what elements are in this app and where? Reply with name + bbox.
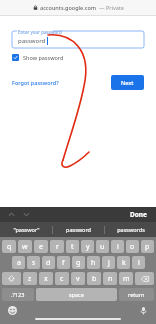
staticText: j [108, 258, 110, 268]
staticText: e [39, 242, 43, 252]
staticText: passwords [117, 226, 145, 233]
staticText: h [91, 258, 96, 268]
button[interactable]: v [71, 272, 85, 285]
button[interactable]: Enter your password [12, 28, 144, 48]
staticText: r [56, 242, 59, 252]
staticText: v [76, 274, 80, 284]
staticText: Next [121, 79, 134, 86]
staticText: c [60, 274, 64, 284]
staticText: m [123, 274, 130, 284]
staticText: x [44, 274, 48, 284]
button[interactable]: Backspace [135, 272, 154, 285]
staticText: y [86, 242, 90, 252]
staticText: p [145, 242, 150, 252]
staticText: return [128, 291, 145, 298]
button[interactable]: e [34, 240, 48, 253]
staticText: space [69, 291, 84, 298]
button[interactable]: "passwor" [0, 222, 52, 237]
button[interactable]: Previous field [6, 209, 17, 220]
staticText: s [32, 258, 36, 268]
staticText: k [122, 258, 126, 268]
staticText: d [46, 258, 51, 268]
button[interactable]: Next field [21, 209, 32, 220]
button[interactable]: p [141, 240, 154, 253]
button[interactable]: f [57, 256, 70, 269]
staticText: a [17, 258, 21, 268]
button[interactable]: Done [127, 208, 150, 221]
staticText: .?123 [11, 291, 25, 298]
button[interactable]: y [81, 240, 94, 253]
staticText: Enter your password [18, 29, 62, 35]
button[interactable]: return [119, 288, 154, 301]
button[interactable]: Emoji [7, 305, 18, 316]
button[interactable]: t [66, 240, 79, 253]
staticText: l [138, 258, 140, 268]
button[interactable]: Shift [2, 272, 21, 285]
staticText: i [117, 242, 119, 252]
button[interactable]: Next [111, 75, 144, 90]
button[interactable]: n [103, 272, 117, 285]
button[interactable]: d [42, 256, 55, 269]
staticText: n [108, 274, 113, 284]
staticText: w [22, 242, 28, 252]
staticText: t [71, 242, 74, 252]
button[interactable]: .?123 [2, 288, 34, 301]
staticText: password [18, 37, 46, 45]
button[interactable]: g [72, 256, 85, 269]
button[interactable]: password [53, 222, 104, 237]
button[interactable]: q [2, 240, 16, 253]
staticText: — Private [99, 4, 124, 11]
button[interactable]: l [132, 256, 145, 269]
button[interactable]: o [126, 240, 139, 253]
staticText: Done [130, 210, 147, 219]
button[interactable]: a [12, 256, 25, 269]
button[interactable]: h [87, 256, 100, 269]
staticText: Show password [23, 54, 64, 61]
button[interactable]: b [87, 272, 101, 285]
button[interactable]: s [27, 256, 40, 269]
button[interactable]: k [117, 256, 130, 269]
button[interactable]: x [39, 272, 53, 285]
button[interactable]: Dictation [138, 305, 149, 316]
button[interactable]: Forgot password? [12, 77, 59, 88]
button[interactable]: c [55, 272, 69, 285]
staticText: accounts.google.com [40, 4, 97, 11]
button[interactable]: w [18, 240, 32, 253]
button[interactable]: passwords [105, 222, 156, 237]
button[interactable]: r [50, 240, 64, 253]
button[interactable]: Address bar [0, 0, 156, 15]
staticText: g [76, 258, 81, 268]
staticText: "passwor" [13, 226, 40, 233]
staticText: b [92, 274, 97, 284]
button[interactable]: j [102, 256, 115, 269]
button[interactable]: z [23, 272, 37, 285]
staticText: o [130, 242, 135, 252]
button[interactable]: m [119, 272, 133, 285]
button[interactable]: space [36, 288, 117, 301]
staticText: Forgot password? [12, 79, 59, 86]
staticText: z [28, 274, 32, 284]
button[interactable]: u [96, 240, 109, 253]
staticText: u [100, 242, 105, 252]
button[interactable]: Show password [12, 54, 64, 61]
staticText: f [62, 258, 65, 268]
staticText: password [66, 226, 91, 233]
staticText: q [7, 242, 12, 252]
button[interactable]: i [111, 240, 124, 253]
